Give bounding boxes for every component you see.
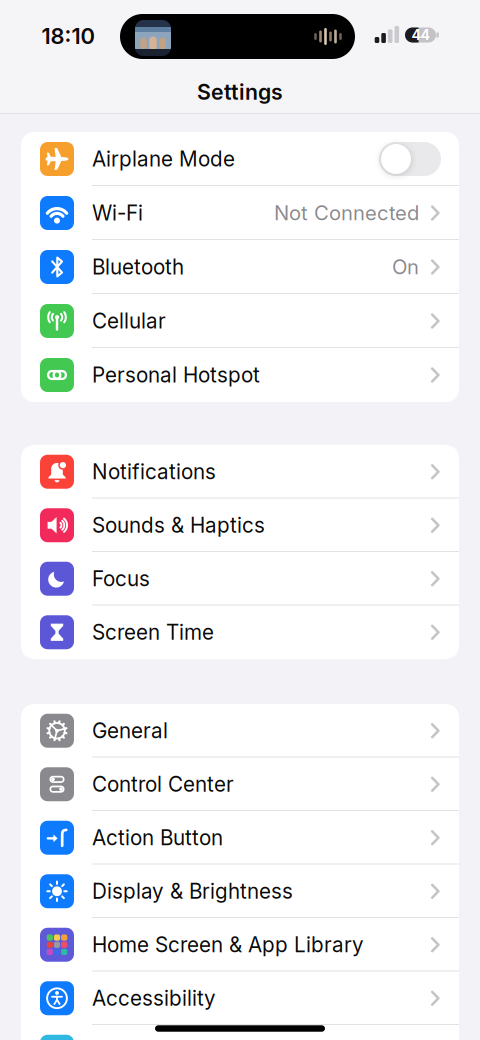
staticText: Wi-Fi [92,200,143,225]
button[interactable]: Sounds & Haptics [21,498,459,552]
staticText: Home Screen & App Library [92,932,364,957]
staticText: Focus [92,566,150,591]
staticText: Sounds & Haptics [92,513,265,538]
staticText: Settings [197,79,283,105]
button[interactable]: Home Screen & App Library [21,918,459,971]
staticText: Airplane Mode [92,146,235,171]
button[interactable]: Wi-Fi [21,186,459,240]
button[interactable]: Control Center [21,757,459,811]
staticText: Personal Hotspot [92,362,260,387]
staticText: Accessibility [92,986,216,1011]
staticText: 18:10 [41,23,94,49]
staticText: On [392,255,419,279]
button[interactable]: Wallpaper [21,1025,459,1040]
staticText: Notifications [92,459,216,484]
button[interactable]: Notifications [21,445,459,498]
button[interactable]: Screen Time [21,605,459,659]
button[interactable]: Display & Brightness [21,864,459,918]
button[interactable]: Personal Hotspot [21,348,459,402]
button[interactable]: Action Button [21,811,459,864]
button[interactable]: Airplane Mode [379,142,441,176]
staticText: Screen Time [92,620,214,645]
staticText: 44 [411,26,429,43]
button[interactable]: Accessibility [21,971,459,1025]
button[interactable]: Bluetooth [21,240,459,294]
staticText: Bluetooth [92,254,184,279]
staticText: General [92,718,168,743]
staticText: Cellular [92,308,166,333]
button[interactable]: Cellular [21,294,459,348]
button[interactable]: Airplane Mode [21,132,459,186]
button[interactable]: Focus [21,552,459,605]
button[interactable]: General [21,704,459,757]
staticText: Action Button [92,825,223,850]
staticText: Not Connected [274,201,419,225]
staticText: Control Center [92,772,234,797]
staticText: Display & Brightness [92,879,293,904]
